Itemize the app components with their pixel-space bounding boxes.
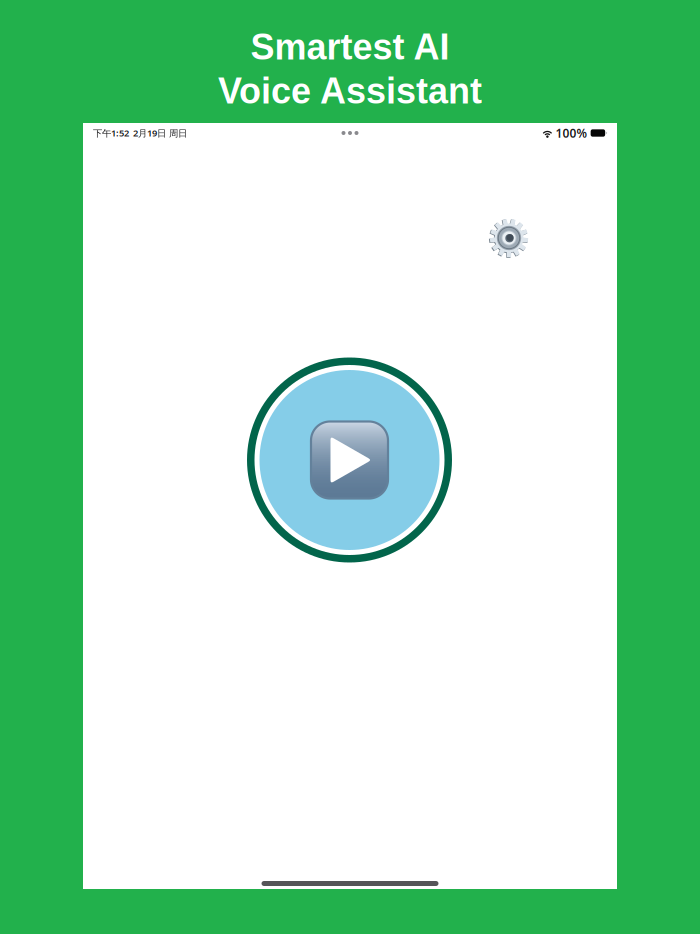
staticText: Voice Assistant [218, 71, 482, 111]
staticText: 下午1:52 [93, 127, 129, 139]
staticText: Smartest AI [250, 27, 449, 67]
staticText: 100% [555, 125, 587, 141]
button[interactable]: Play [247, 357, 452, 562]
staticText: 2月19日 周日 [129, 127, 187, 139]
button[interactable]: Settings [489, 218, 528, 257]
